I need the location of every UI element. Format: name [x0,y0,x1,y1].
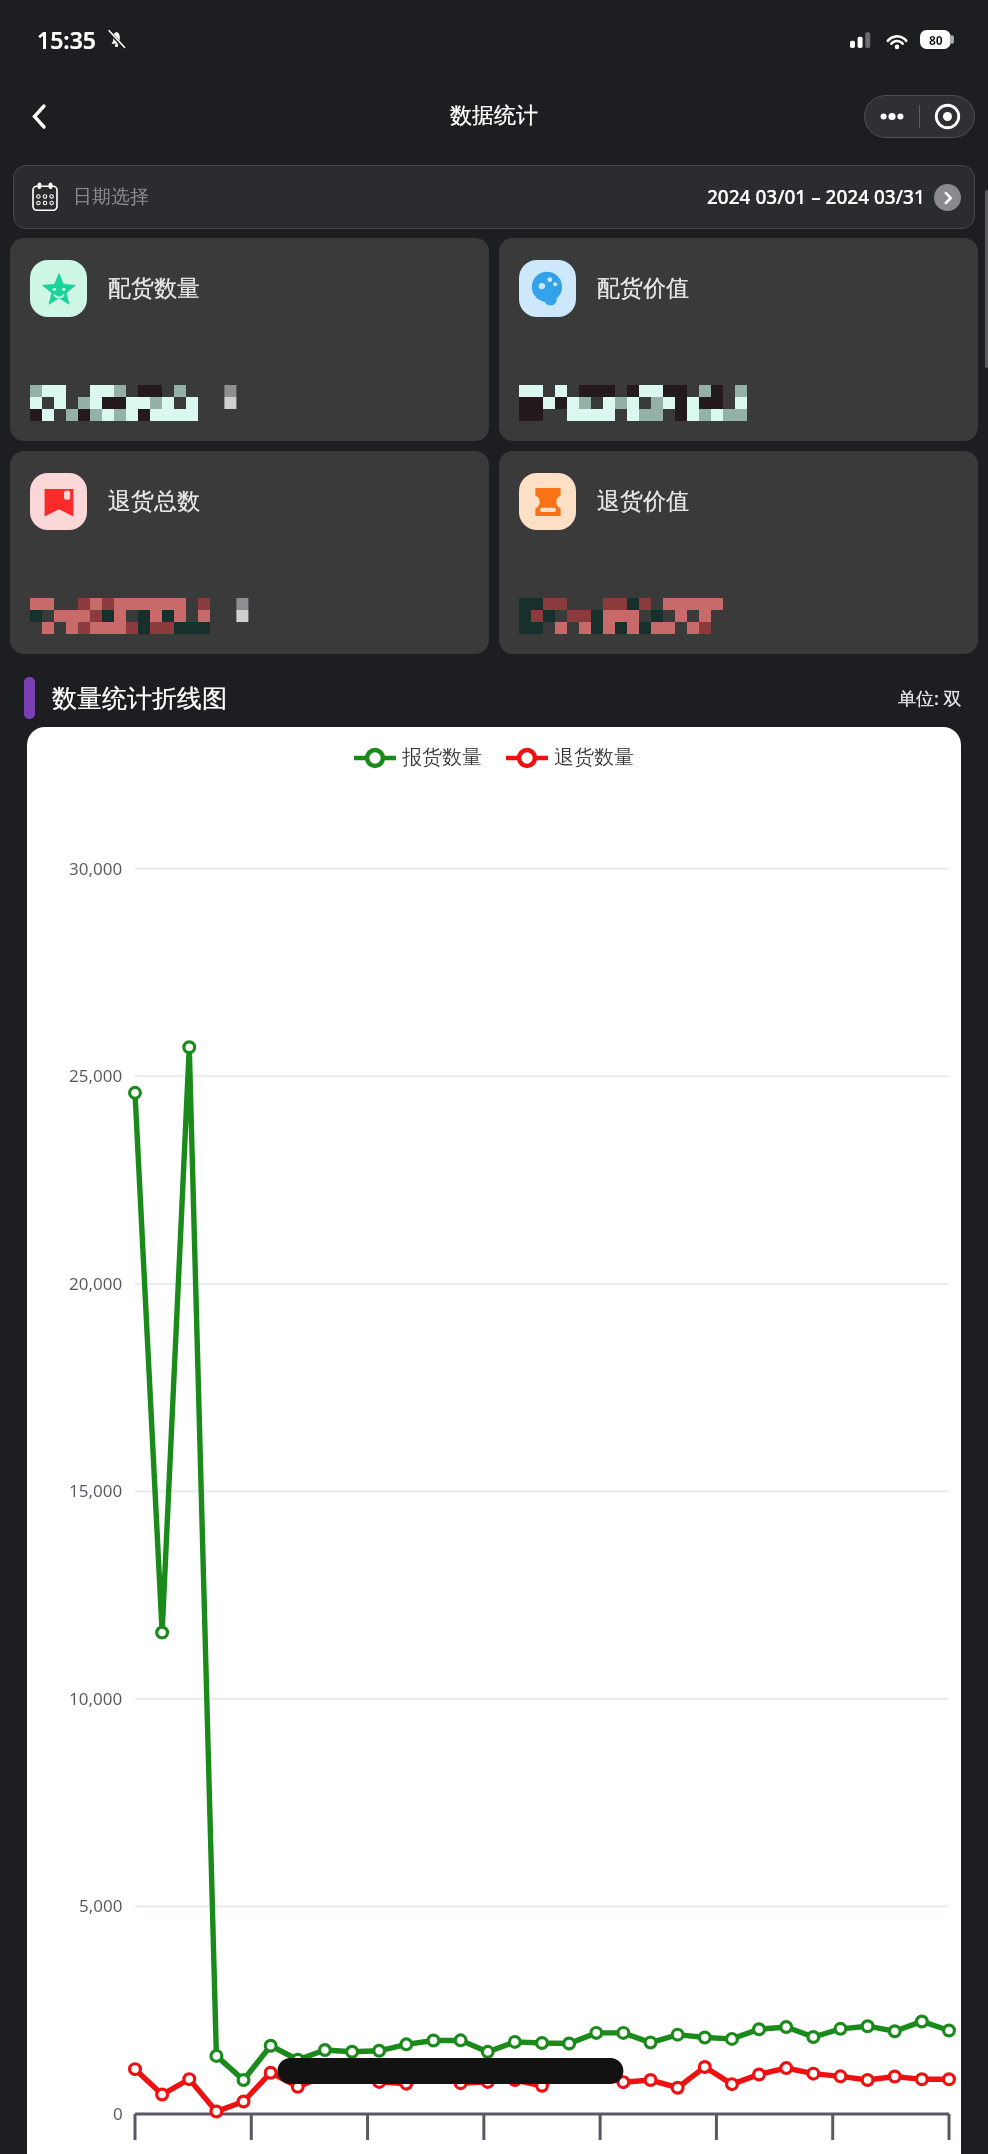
button[interactable]: 退货总数 [10,451,489,654]
staticText: 配货价值 [597,274,689,303]
staticText: 退货总数 [108,487,200,516]
staticText: 报货数量 [402,745,482,770]
staticText: 日期选择 [73,185,149,209]
staticText: 80 [929,32,943,48]
button[interactable]: Close [920,95,975,138]
staticText: 数量统计折线图 [52,683,227,714]
button[interactable]: 日期选择 [13,165,975,229]
staticText: 0 [113,2102,123,2125]
button[interactable]: 配货数量 [10,238,489,441]
button[interactable]: More options [864,95,919,138]
button[interactable]: Back [17,94,61,138]
staticText: 25,000 [69,1064,123,1087]
button[interactable]: 配货价值 [499,238,978,441]
staticText: 20,000 [69,1272,123,1295]
staticText: 15:35 [37,24,96,55]
staticText: 单位: 双 [898,686,962,711]
staticText: 数据统计 [450,102,538,130]
staticText: 退货价值 [597,487,689,516]
staticText: 15,000 [69,1479,123,1502]
staticText: 5,000 [79,1894,123,1917]
staticText: 30,000 [69,857,123,880]
staticText: 配货数量 [108,274,200,303]
staticText: 退货数量 [554,745,634,770]
staticText: 2024 03/01 – 2024 03/31 [707,184,925,210]
staticText: 10,000 [69,1687,123,1710]
button[interactable]: 退货价值 [499,451,978,654]
